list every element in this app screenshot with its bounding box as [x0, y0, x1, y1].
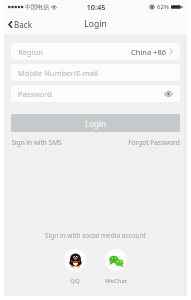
staticText: Mobile Number/E-mail	[18, 68, 98, 78]
button[interactable]: Sign in with QQ	[62, 248, 88, 285]
staticText: 中国电信	[25, 3, 49, 11]
button[interactable]: Sign in with WeChat	[103, 248, 129, 285]
other: Sign in with QQ	[68, 253, 83, 268]
staticText: QQ	[70, 277, 80, 285]
button[interactable]: Mobile Number/E-mail	[11, 64, 180, 81]
button[interactable]: Sign in with SMS	[11, 138, 62, 147]
staticText: WeChat	[105, 277, 127, 285]
staticText: 10:45	[86, 2, 106, 12]
staticText: Forgot Password	[128, 138, 180, 147]
staticText: Back	[14, 19, 32, 30]
button[interactable]: Forgot Password	[128, 138, 180, 147]
other: Sign in with WeChat	[109, 253, 124, 268]
staticText: Login	[84, 18, 107, 30]
staticText: 62%	[157, 3, 169, 11]
staticText: Sign in with SMS	[11, 138, 62, 147]
button[interactable]: Password	[11, 85, 180, 102]
button[interactable]: Back	[4, 16, 36, 33]
button[interactable]: Show password	[164, 91, 173, 97]
staticText: Password	[18, 89, 52, 99]
staticText: Login	[85, 118, 106, 129]
button[interactable]: Login	[11, 114, 180, 132]
staticText: China +86	[131, 47, 166, 57]
staticText: Region	[18, 47, 43, 57]
staticText: Sign in with social media account	[45, 231, 146, 240]
button[interactable]: Region	[11, 43, 180, 60]
